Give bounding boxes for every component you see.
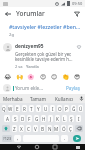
button[interactable]: J bbox=[48, 115, 53, 122]
button[interactable]: F bbox=[27, 115, 32, 122]
button[interactable]: E bbox=[15, 105, 20, 112]
staticText: G bbox=[35, 116, 39, 122]
staticText: O bbox=[58, 106, 62, 112]
button[interactable]: B bbox=[40, 125, 45, 132]
button[interactable]: Tamam bbox=[25, 94, 51, 103]
button[interactable]: W bbox=[8, 105, 13, 112]
staticText: denizyem95 bbox=[15, 43, 44, 50]
staticText: 2g bbox=[9, 32, 14, 38]
staticText: 😍 bbox=[40, 73, 47, 80]
button[interactable]: Geri bbox=[10, 144, 28, 150]
button[interactable]: denizyem95 bbox=[0, 42, 85, 70]
staticText: R bbox=[23, 106, 26, 112]
button[interactable]: O bbox=[57, 105, 62, 112]
staticText: Yorum ekle... bbox=[15, 85, 43, 91]
button[interactable]: Merhaba bbox=[0, 94, 25, 103]
button[interactable]: P bbox=[64, 105, 69, 112]
button[interactable]: I bbox=[76, 115, 81, 122]
button[interactable]: Ö bbox=[61, 125, 66, 132]
button[interactable]: V bbox=[33, 125, 38, 132]
staticText: ?123 bbox=[3, 136, 12, 141]
button[interactable]: Virgül bbox=[14, 135, 21, 142]
staticText: H bbox=[42, 116, 46, 122]
button[interactable]: 🙌 bbox=[16, 72, 24, 80]
staticText: . bbox=[64, 135, 66, 142]
button[interactable]: Shift bbox=[2, 125, 10, 132]
button[interactable]: Q bbox=[2, 105, 6, 112]
button[interactable]: Gönder bbox=[73, 135, 81, 142]
staticText: Q bbox=[2, 106, 6, 112]
button[interactable]: ?123 bbox=[2, 135, 12, 142]
button[interactable]: Ü bbox=[78, 105, 83, 112]
staticText: C bbox=[27, 126, 30, 132]
button[interactable]: N bbox=[47, 125, 52, 132]
staticText: S bbox=[14, 116, 17, 122]
staticText: Tamam bbox=[30, 96, 46, 102]
staticText: Yorumlar bbox=[16, 9, 45, 18]
button[interactable]: Filtrele bbox=[72, 9, 82, 19]
staticText: L bbox=[63, 116, 66, 122]
button[interactable]: Z bbox=[12, 125, 17, 132]
button[interactable]: Son kullanılanlar bbox=[46, 144, 64, 150]
staticText: U bbox=[44, 106, 48, 112]
button[interactable]: K bbox=[55, 115, 60, 122]
button[interactable]: A bbox=[4, 115, 10, 122]
staticText: Ş bbox=[70, 116, 73, 122]
button[interactable]: Ana ekran bbox=[28, 144, 46, 150]
button[interactable]: I bbox=[50, 105, 55, 112]
button[interactable]: C bbox=[26, 125, 31, 132]
staticText: 🌸 bbox=[27, 73, 35, 80]
button[interactable]: Kullanıcı bbox=[51, 94, 77, 103]
staticText: 🙌 bbox=[16, 73, 24, 80]
staticText: , bbox=[17, 135, 19, 142]
button[interactable]: X bbox=[19, 125, 24, 132]
button[interactable]: D bbox=[20, 115, 25, 122]
button[interactable]: 😊 bbox=[50, 72, 58, 80]
button[interactable]: H bbox=[41, 115, 46, 122]
staticText: M bbox=[54, 126, 59, 132]
staticText: Ü bbox=[79, 106, 83, 112]
button[interactable]: Ğ bbox=[71, 105, 76, 112]
button[interactable]: Y bbox=[36, 105, 41, 112]
staticText: Z bbox=[13, 126, 16, 132]
staticText: J bbox=[50, 116, 52, 122]
button[interactable]: Paylaş bbox=[64, 84, 82, 92]
staticText: I bbox=[78, 116, 80, 122]
button[interactable]: U bbox=[43, 105, 48, 112]
button[interactable]: Sil bbox=[75, 125, 83, 132]
staticText: W bbox=[8, 106, 13, 112]
button[interactable]: 👏 bbox=[62, 72, 70, 80]
staticText: 👏 bbox=[62, 73, 70, 80]
staticText: #tavsiyeler #lezzetler #benzeriyiz bbox=[9, 23, 81, 30]
button[interactable]: 😎 bbox=[73, 72, 81, 80]
button[interactable]: R bbox=[22, 105, 27, 112]
button[interactable]: G bbox=[34, 115, 39, 122]
staticText: 09:50 bbox=[72, 1, 83, 6]
staticText: K bbox=[56, 116, 59, 122]
button[interactable]: L bbox=[62, 115, 67, 122]
button[interactable]: 🌸 bbox=[27, 72, 35, 80]
staticText: 😎 bbox=[74, 73, 81, 80]
staticText: D bbox=[21, 116, 25, 122]
button[interactable]: Sesle yaz bbox=[77, 94, 85, 103]
button[interactable]: Nokta bbox=[61, 135, 68, 142]
button[interactable]: M bbox=[54, 125, 59, 132]
button[interactable]: 😂 bbox=[4, 72, 12, 80]
button[interactable]: Ş bbox=[69, 115, 74, 122]
button[interactable]: Ç bbox=[68, 125, 73, 132]
staticText: E bbox=[16, 106, 19, 112]
staticText: Paylaş bbox=[66, 85, 80, 91]
button[interactable]: Yorum ekle... bbox=[13, 85, 64, 91]
button[interactable]: 😍 bbox=[39, 72, 47, 80]
staticText: Ç bbox=[69, 126, 72, 132]
button[interactable]: S bbox=[12, 115, 18, 122]
staticText: 2 sa bbox=[15, 64, 23, 69]
staticText: Ğ bbox=[72, 106, 76, 112]
button[interactable]: T bbox=[29, 105, 34, 112]
button[interactable]: Geri bbox=[3, 9, 13, 19]
button[interactable]: Beğen bbox=[75, 43, 82, 50]
staticText: 😊 bbox=[51, 73, 58, 80]
button[interactable]: Klavye bbox=[71, 144, 85, 150]
staticText: P bbox=[65, 106, 68, 112]
